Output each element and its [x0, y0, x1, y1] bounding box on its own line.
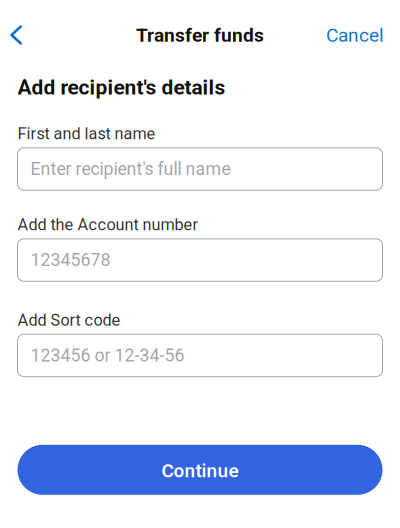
button[interactable]: Back — [1, 15, 31, 55]
staticText: Cancel — [326, 24, 384, 46]
staticText: First and last name — [17, 124, 155, 143]
staticText: Add Sort code — [17, 311, 120, 330]
button[interactable]: Cancel — [310, 14, 400, 56]
button[interactable]: Continue — [17, 445, 382, 495]
staticText: 123456 or 12-34-56 — [30, 345, 184, 366]
staticText: Transfer funds — [136, 24, 264, 46]
staticText: Continue — [161, 460, 238, 482]
staticText: 12345678 — [30, 250, 110, 270]
staticText: Add the Account number — [17, 215, 198, 234]
staticText: Enter recipient's full name — [30, 159, 230, 179]
staticText: Add recipient's details — [17, 75, 225, 100]
